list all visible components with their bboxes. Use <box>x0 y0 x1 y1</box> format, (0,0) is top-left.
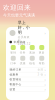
staticText: 常用功能 <box>13 40 25 44</box>
staticText: › <box>43 87 45 92</box>
staticText: › <box>43 67 45 72</box>
staticText: › <box>43 82 45 87</box>
staticText: › <box>43 77 45 82</box>
staticText: 我的订单 <box>9 68 21 71</box>
button[interactable]: 钱包 <box>27 56 37 65</box>
staticText: 客服中心 <box>9 83 21 86</box>
staticText: › <box>44 30 45 36</box>
button[interactable]: 任务 <box>18 45 27 54</box>
button[interactable]: 订单 <box>8 56 18 65</box>
staticText: 任务 <box>20 51 26 54</box>
button[interactable]: 奖励 <box>27 45 37 54</box>
button[interactable]: 签到 <box>8 45 18 54</box>
staticText: 更多 <box>39 51 45 54</box>
staticText: 3 张 <box>37 73 43 76</box>
staticText: 优惠券 <box>9 73 18 76</box>
button[interactable]: 客服中心 <box>6 82 49 87</box>
button[interactable]: 帮助 <box>37 56 46 65</box>
staticText: 钱包 <box>29 62 35 65</box>
button[interactable]: 更多 <box>37 45 46 54</box>
staticText: › <box>43 72 45 77</box>
staticText: 优惠 <box>20 62 26 65</box>
staticText: 早上好，小明 <box>18 20 30 35</box>
staticText: 今天也要元气满满 <box>3 13 35 18</box>
button[interactable]: 优惠 <box>18 56 27 65</box>
button[interactable]: 收货地址 <box>6 77 49 82</box>
staticText: 订单 <box>10 62 16 65</box>
staticText: 收货地址 <box>9 78 21 81</box>
staticText: 欢迎回来 <box>3 3 31 12</box>
staticText: 帮助 <box>39 62 45 65</box>
button[interactable]: 我的订单 <box>6 67 49 72</box>
button[interactable]: 优惠券 <box>6 72 49 77</box>
staticText: 签到 <box>10 51 16 54</box>
staticText: 设置 <box>9 88 15 91</box>
button[interactable]: 早上好，小明 <box>6 27 49 39</box>
button[interactable]: 设置 <box>6 87 49 92</box>
staticText: 全部 <box>37 68 43 71</box>
staticText: 会员有效期 2025.12 <box>18 35 31 46</box>
staticText: 奖励 <box>29 51 35 54</box>
